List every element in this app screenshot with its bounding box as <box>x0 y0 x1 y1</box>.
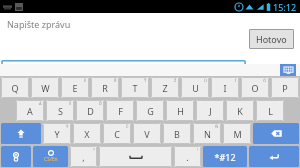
staticText: Ž <box>174 78 177 83</box>
staticText: Á <box>39 101 42 106</box>
button[interactable]: A <box>16 100 44 121</box>
other: Space <box>99 146 172 167</box>
button[interactable]: Key <box>99 146 172 167</box>
button[interactable]: *#12 <box>203 146 247 167</box>
staticText: CS/En <box>44 156 58 163</box>
button[interactable]: H <box>166 100 194 121</box>
staticText: O <box>251 82 259 94</box>
staticText: Ň <box>215 124 219 129</box>
staticText: ! <box>197 147 199 152</box>
staticText: D <box>87 105 94 117</box>
button[interactable]: P <box>271 77 299 98</box>
button[interactable]: W <box>31 77 59 98</box>
staticText: X <box>84 128 90 140</box>
button[interactable]: B <box>163 123 191 144</box>
button[interactable]: D <box>76 100 104 121</box>
staticText: S <box>58 105 63 117</box>
staticText: Ď <box>99 101 102 106</box>
button[interactable]: Z <box>151 77 179 98</box>
staticText: Š <box>69 101 72 106</box>
staticText: Y <box>54 128 60 140</box>
button[interactable]: L <box>256 100 284 121</box>
button[interactable]: Change keyboard <box>280 64 296 76</box>
button[interactable]: X <box>73 123 101 144</box>
staticText: Ó <box>263 78 267 83</box>
button[interactable]: Key <box>33 146 68 167</box>
staticText: N <box>204 128 211 140</box>
button[interactable]: M <box>223 123 251 144</box>
staticText: Č <box>126 124 129 129</box>
staticText: F <box>118 105 123 117</box>
staticText: K <box>237 105 243 117</box>
other: Settings <box>1 146 31 167</box>
staticText: P <box>282 82 288 94</box>
button[interactable]: N <box>193 123 221 144</box>
staticText: Ř <box>114 78 117 83</box>
staticText: B <box>174 128 180 140</box>
staticText: M <box>233 128 242 140</box>
staticText: Hotovo <box>256 33 287 45</box>
staticText: *#12 <box>214 151 236 163</box>
button[interactable]: K <box>226 100 254 121</box>
staticText: . <box>186 151 189 163</box>
button[interactable]: Key <box>253 123 299 144</box>
staticText: Ý <box>66 124 69 129</box>
other: Enter <box>249 146 299 167</box>
staticText: V <box>144 128 150 140</box>
button[interactable]: Hotovo <box>249 29 294 49</box>
button[interactable]: Key <box>249 146 299 167</box>
button[interactable]: U <box>181 77 209 98</box>
staticText: I <box>223 82 227 94</box>
staticText: W <box>41 82 50 94</box>
staticText: Ú <box>204 78 207 83</box>
staticText: , <box>82 151 85 163</box>
button[interactable]: J <box>196 100 224 121</box>
staticText: R <box>102 82 108 94</box>
staticText: ? <box>93 147 95 152</box>
staticText: G <box>147 105 154 117</box>
button[interactable]: Y <box>43 123 71 144</box>
button[interactable]: . <box>174 146 201 167</box>
button[interactable]: C <box>103 123 131 144</box>
other: Switch language <box>33 146 68 167</box>
staticText: A <box>27 105 33 117</box>
staticText: C <box>114 128 120 140</box>
button[interactable]: I <box>211 77 239 98</box>
button[interactable]: F <box>106 100 134 121</box>
other: Backspace <box>253 123 299 144</box>
button[interactable]: E <box>61 77 89 98</box>
button[interactable]: V <box>133 123 161 144</box>
staticText: T <box>132 82 138 94</box>
staticText: Í <box>235 78 237 83</box>
button[interactable]: O <box>241 77 269 98</box>
staticText: Q <box>11 82 19 94</box>
staticText: Z <box>162 82 168 94</box>
button[interactable]: Q <box>1 77 29 98</box>
button[interactable]: , <box>70 146 97 167</box>
staticText: H <box>177 105 184 117</box>
button[interactable]: Key <box>1 123 41 144</box>
staticText: E <box>72 82 78 94</box>
staticText: Ť <box>144 78 147 83</box>
staticText: 15:12 <box>273 1 297 13</box>
button[interactable]: S <box>46 100 74 121</box>
staticText: L <box>268 105 273 117</box>
staticText: U <box>192 82 199 94</box>
button[interactable]: T <box>121 77 149 98</box>
other: Shift <box>1 123 41 144</box>
button[interactable]: Key <box>1 146 31 167</box>
staticText: J <box>209 105 212 117</box>
button[interactable]: G <box>136 100 164 121</box>
staticText: É <box>84 78 87 83</box>
staticText: Napište zprávu <box>7 18 71 30</box>
button[interactable]: R <box>91 77 119 98</box>
